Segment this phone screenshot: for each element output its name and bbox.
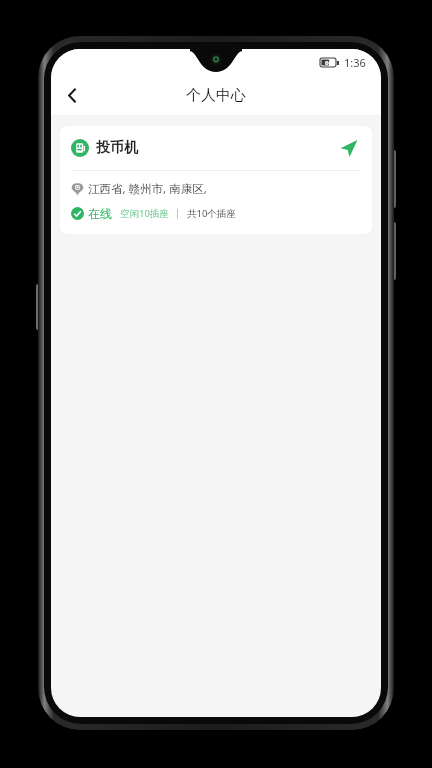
staticText: 60: [325, 59, 332, 67]
button[interactable]: Back: [51, 76, 93, 115]
button[interactable]: 投币机: [60, 126, 372, 234]
staticText: 在线: [88, 206, 112, 221]
staticText: 个人中心: [186, 86, 246, 105]
staticText: 共10个插座: [187, 207, 236, 220]
staticText: 空闲10插座: [120, 207, 169, 220]
button[interactable]: Navigate: [335, 135, 361, 161]
staticText: 投币机: [96, 139, 138, 157]
staticText: 江西省, 赣州市, 南康区,: [88, 181, 207, 197]
staticText: 1:36: [344, 55, 366, 70]
